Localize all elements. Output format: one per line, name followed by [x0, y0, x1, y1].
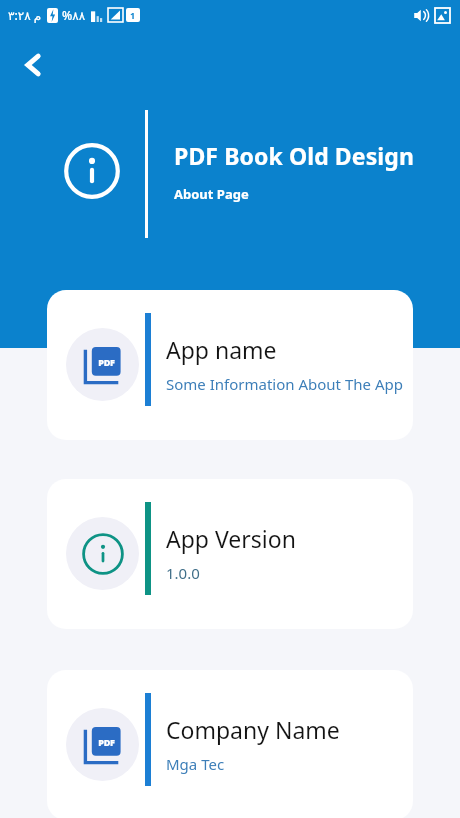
staticText: Some Information About The App: [166, 374, 403, 394]
staticText: 1: [130, 9, 136, 21]
staticText: PDF: [98, 736, 115, 748]
staticText: Company Name: [166, 714, 340, 745]
staticText: Mga Tec: [166, 754, 225, 774]
staticText: 1.0.0: [166, 563, 200, 583]
staticText: App Version: [166, 523, 296, 554]
staticText: PDF Book Old Design: [174, 140, 414, 171]
staticText: PDF: [98, 356, 115, 368]
button[interactable]: App Version: [47, 479, 413, 629]
staticText: About Page: [174, 185, 249, 203]
staticText: م ٣:٢٨: [8, 7, 42, 23]
button[interactable]: Back: [10, 42, 56, 88]
staticText: %٨٨: [62, 7, 86, 23]
button[interactable]: PDF: [47, 670, 413, 818]
staticText: App name: [166, 334, 277, 365]
button[interactable]: PDF: [47, 290, 413, 440]
